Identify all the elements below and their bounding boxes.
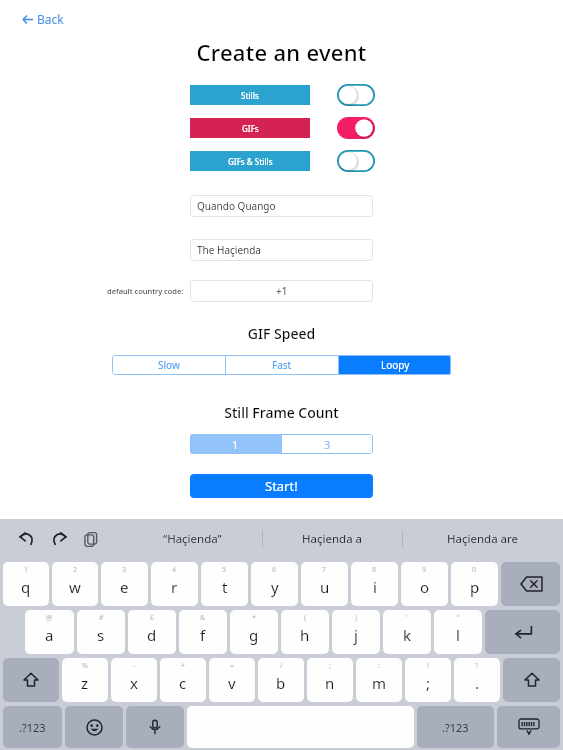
staticText: s — [97, 625, 105, 645]
button[interactable]: Toggle on — [337, 117, 375, 139]
button[interactable]: @ — [25, 610, 74, 654]
button[interactable]: 7 — [301, 562, 348, 606]
staticText: y — [271, 577, 279, 597]
button[interactable]: .?123 — [417, 706, 494, 748]
staticText: # — [99, 613, 104, 623]
button[interactable]: Toggle off — [337, 84, 375, 106]
button[interactable]: : — [356, 658, 402, 702]
staticText: g — [249, 625, 259, 645]
button[interactable]: £ — [128, 610, 176, 654]
button[interactable]: 2 — [52, 562, 98, 606]
button[interactable]: .?123 — [3, 706, 62, 748]
button[interactable]: 3 — [101, 562, 148, 606]
staticText: a — [45, 625, 54, 645]
button[interactable]: - — [111, 658, 157, 702]
button[interactable]: The Haçienda — [190, 239, 373, 261]
button[interactable]: 5 — [201, 562, 248, 606]
button[interactable]: # — [77, 610, 125, 654]
staticText: ? — [475, 661, 479, 671]
button[interactable]: GIFs — [190, 118, 310, 138]
button[interactable]: Backspace — [501, 562, 560, 606]
staticText: 0 — [472, 565, 477, 575]
button[interactable]: ! — [405, 658, 451, 702]
button[interactable]: Toggle off — [337, 150, 375, 172]
button[interactable]: * — [230, 610, 278, 654]
staticText: + — [181, 661, 186, 671]
staticText: ( — [304, 613, 307, 623]
button[interactable]: 1 — [3, 562, 49, 606]
button[interactable]: = — [209, 658, 255, 702]
button[interactable]: ( — [281, 610, 329, 654]
button[interactable]: 9 — [401, 562, 448, 606]
button[interactable]: “Haçienda” — [122, 519, 262, 559]
button[interactable]: & — [179, 610, 227, 654]
staticText: 9 — [422, 565, 427, 575]
staticText: x — [130, 673, 138, 693]
button[interactable]: 3 — [282, 434, 373, 454]
button[interactable]: % — [62, 658, 108, 702]
staticText: ! — [427, 661, 429, 671]
staticText: b — [276, 673, 286, 693]
button[interactable]: 4 — [151, 562, 198, 606]
staticText: k — [403, 625, 412, 645]
button[interactable]: +1 — [190, 280, 373, 302]
button[interactable]: Return — [485, 610, 560, 654]
button[interactable]: 8 — [351, 562, 398, 606]
button[interactable]: / — [258, 658, 304, 702]
button[interactable]: Back — [18, 9, 68, 29]
staticText: Quando Quango — [197, 199, 276, 213]
staticText: t — [222, 577, 228, 597]
staticText: Stills — [241, 90, 259, 101]
staticText: z — [81, 673, 89, 693]
staticText: 3 — [122, 565, 127, 575]
button[interactable]: " — [434, 610, 482, 654]
staticText: @ — [46, 613, 53, 623]
button[interactable]: Emoji — [65, 706, 123, 748]
staticText: Loopy — [381, 358, 410, 372]
staticText: The Haçienda — [197, 243, 261, 257]
button[interactable]: Loopy — [339, 355, 451, 375]
button[interactable]: Haçienda are — [403, 519, 563, 559]
staticText: % — [82, 661, 88, 671]
button[interactable]: Voice input — [126, 706, 184, 748]
staticText: . — [475, 673, 480, 693]
button[interactable]: Slow — [112, 355, 225, 375]
button[interactable]: Shift — [3, 658, 59, 702]
staticText: - — [133, 661, 136, 671]
button[interactable]: Fast — [226, 355, 338, 375]
button[interactable]: 0 — [451, 562, 498, 606]
button[interactable]: Haçienda a — [263, 519, 402, 559]
staticText: j — [354, 625, 358, 645]
button[interactable]: Stills — [190, 85, 310, 105]
button[interactable]: Shift right — [503, 658, 560, 702]
button[interactable]: 1 — [190, 434, 281, 454]
staticText: p — [470, 577, 480, 597]
staticText: " — [457, 613, 460, 623]
staticText: q — [21, 577, 31, 597]
button[interactable]: ? — [454, 658, 500, 702]
staticText: £ — [150, 613, 155, 623]
button[interactable]: ) — [332, 610, 380, 654]
button[interactable]: GIFs & Stills — [190, 151, 310, 171]
staticText: .?123 — [19, 720, 46, 735]
button[interactable]: ; — [307, 658, 353, 702]
button[interactable]: + — [160, 658, 206, 702]
staticText: 5 — [222, 565, 227, 575]
button[interactable]: ' — [383, 610, 431, 654]
staticText: GIFs & Stills — [228, 156, 273, 167]
staticText: r — [171, 577, 178, 597]
button[interactable]: Quando Quango — [190, 195, 373, 217]
button[interactable]: Undo — [14, 526, 40, 552]
staticText: / — [280, 661, 283, 671]
staticText: GIFs — [242, 123, 259, 134]
staticText: 1 — [232, 437, 239, 452]
button[interactable]: Redo — [46, 526, 72, 552]
staticText: Still Frame Count — [0, 403, 563, 422]
button[interactable]: 6 — [251, 562, 298, 606]
button[interactable]: Hide keyboard — [497, 706, 560, 748]
button[interactable]: Copy — [78, 526, 104, 552]
button[interactable]: Start! — [190, 474, 373, 498]
staticText: ' — [406, 613, 408, 623]
staticText: c — [179, 673, 187, 693]
